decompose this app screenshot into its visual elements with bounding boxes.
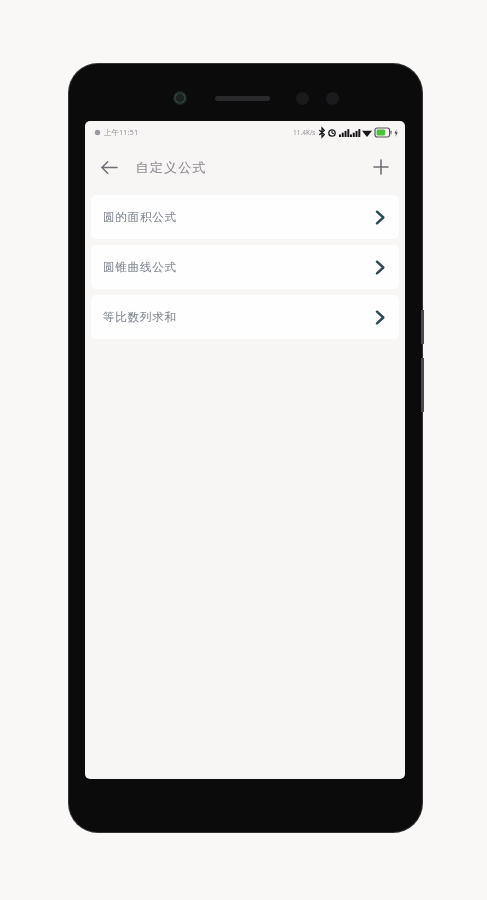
button[interactable]: Back	[91, 149, 127, 185]
button[interactable]: 等比数列求和	[91, 295, 399, 339]
staticText: 上午11:51	[104, 127, 139, 137]
button[interactable]: 圆锥曲线公式	[91, 245, 399, 289]
button[interactable]: Add formula	[363, 149, 399, 185]
staticText: 等比数列求和	[103, 310, 177, 324]
staticText: 自定义公式	[135, 159, 206, 175]
staticText: 圆的面积公式	[103, 210, 177, 224]
button[interactable]: 圆的面积公式	[91, 195, 399, 239]
staticText: 圆锥曲线公式	[103, 260, 177, 274]
staticText: 11.4K/s	[293, 128, 316, 137]
